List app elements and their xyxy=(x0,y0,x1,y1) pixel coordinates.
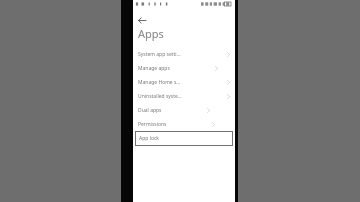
button[interactable]: Permissions xyxy=(133,117,235,131)
button[interactable]: Dual apps xyxy=(133,103,235,117)
staticText: Manage apps xyxy=(138,65,170,72)
button[interactable]: App lock xyxy=(135,131,233,146)
staticText: App lock xyxy=(139,135,160,142)
button[interactable]: Uninstalled system apps xyxy=(133,89,235,103)
staticText: Apps xyxy=(138,26,164,41)
button[interactable]: System app settings xyxy=(133,47,235,61)
staticText: System app settings xyxy=(138,51,182,58)
button[interactable]: Manage Home screen shortcuts xyxy=(133,75,235,89)
staticText: Permissions xyxy=(138,121,167,128)
button[interactable]: Manage apps xyxy=(133,61,235,75)
staticText: Dual apps xyxy=(138,107,162,114)
button[interactable]: Back xyxy=(138,15,150,25)
staticText: Manage Home screen shortcuts xyxy=(138,79,182,86)
staticText: Uninstalled system apps xyxy=(138,93,182,100)
